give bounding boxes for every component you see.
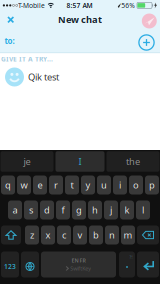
button[interactable]: Return [137,251,159,277]
button[interactable]: t [65,175,79,194]
button[interactable]: c [57,225,71,244]
button[interactable]: s [24,200,38,219]
button[interactable]: f [56,200,70,219]
button[interactable]: j [104,200,118,219]
button[interactable]: the [106,151,159,172]
button[interactable]: u [97,175,111,194]
staticText: b [93,229,99,241]
staticText: GIVE IT A TRY... [1,55,53,63]
staticText: f [61,204,64,216]
button[interactable]: 123 [1,251,19,277]
button[interactable]: q [1,175,15,194]
staticText: New chat [58,13,102,26]
button[interactable]: k [120,200,134,219]
button[interactable]: Next keyboard [21,251,39,277]
button[interactable]: I [55,151,104,172]
staticText: i [119,179,121,191]
staticText: h [92,204,98,216]
staticText: q [5,179,11,191]
staticText: j [110,204,112,216]
staticText: x [45,229,50,241]
staticText: c [62,229,66,241]
staticText: l [142,204,144,216]
button[interactable]: e [33,175,47,194]
staticText: v [77,229,82,241]
button[interactable]: Send [142,13,157,28]
button[interactable]: y [81,175,95,194]
staticText: SwiftKey [70,265,91,272]
staticText: 8:57 AM [66,1,92,10]
staticText: t [70,179,73,191]
staticText: w [20,179,27,191]
staticText: d [44,204,50,216]
button[interactable]: x [41,225,55,244]
button[interactable]: Shift [1,225,21,244]
button[interactable]: r [49,175,63,194]
button[interactable]: a [8,200,22,219]
button[interactable]: p [145,175,159,194]
staticText: s [29,204,33,216]
staticText: m [123,229,132,241]
staticText: the [126,155,140,168]
button[interactable]: g [72,200,86,219]
button[interactable]: v [73,225,87,244]
staticText: k [124,204,129,216]
button[interactable]: w [17,175,31,194]
button[interactable]: h [88,200,102,219]
staticText: EN FR [71,257,85,264]
staticText: to: [4,36,14,46]
button[interactable]: i [113,175,127,194]
button[interactable]: Close [5,14,16,25]
staticText: I [78,155,81,168]
staticText: je [23,155,30,168]
button[interactable]: b [89,225,103,244]
staticText: a [12,204,17,216]
button[interactable]: Space [41,251,116,277]
staticText: e [37,179,42,191]
staticText: n [109,229,115,241]
button[interactable]: o [129,175,143,194]
staticText: o [133,179,139,191]
staticText: 56% [121,1,135,10]
staticText: y [85,179,90,191]
staticText: r [54,179,58,191]
staticText: ?! [129,254,132,260]
button[interactable]: l [136,200,150,219]
button[interactable]: Qik test [0,65,160,89]
button[interactable]: d [40,200,54,219]
staticText: u [101,179,107,191]
staticText: 123 [4,262,16,271]
button[interactable]: Add contact [139,35,154,50]
button[interactable]: Period [119,251,135,277]
button[interactable]: je [0,151,53,172]
staticText: g [76,204,82,216]
button[interactable]: m [121,225,135,244]
button[interactable]: n [105,225,119,244]
staticText: z [30,229,34,241]
staticText: Qik test [28,71,59,83]
staticText: T-Mobile [18,1,45,10]
button[interactable]: Delete [137,225,159,244]
button[interactable]: z [25,225,39,244]
staticText: p [149,179,155,191]
